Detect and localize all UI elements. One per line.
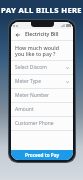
button[interactable]: Proceed to Pay <box>11 150 73 160</box>
staticText: Amount <box>15 106 69 113</box>
staticText: PAY ALL BILLS HERE <box>1 5 82 15</box>
button[interactable]: Amount <box>11 103 73 116</box>
staticText: Select Discom Company <box>15 64 66 71</box>
button[interactable]: Meter Type <box>11 75 73 88</box>
staticText: How much would you like to pay ? <box>15 44 69 58</box>
button[interactable]: Select Discom Company <box>11 61 73 74</box>
staticText: Proceed to Pay <box>25 152 59 158</box>
button[interactable]: Back <box>14 31 21 38</box>
button[interactable]: Meter Number <box>11 89 73 102</box>
button[interactable]: Customer Phone <box>11 117 73 130</box>
staticText: Meter Type <box>15 78 66 85</box>
staticText: Electricity Bill Payment <box>25 31 70 38</box>
staticText: Meter Number <box>15 92 69 99</box>
staticText: Customer Phone <box>15 120 69 127</box>
